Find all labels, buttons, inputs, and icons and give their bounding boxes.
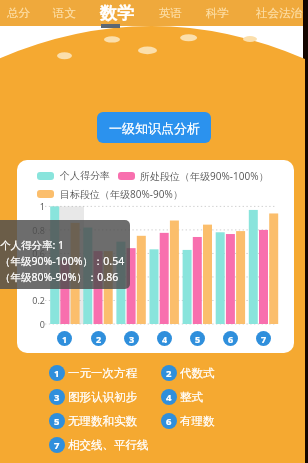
staticText: 0 bbox=[24, 318, 45, 330]
staticText: 6 bbox=[166, 415, 172, 428]
staticText: 1 bbox=[24, 200, 45, 212]
button[interactable]: 一级知识点分析 bbox=[97, 112, 211, 143]
staticText: 7 bbox=[261, 333, 267, 345]
staticText: （年级80%-90%）：0.86 bbox=[0, 270, 119, 284]
staticText: 1 bbox=[62, 333, 68, 345]
staticText: 3 bbox=[129, 333, 135, 345]
staticText: 个人得分率: 1 bbox=[0, 238, 65, 252]
button[interactable]: 数学 bbox=[92, 0, 142, 26]
button[interactable]: 总分 bbox=[0, 0, 37, 26]
button[interactable]: 2 bbox=[91, 331, 106, 346]
button[interactable]: 5 bbox=[190, 331, 205, 346]
button[interactable]: 6 bbox=[223, 331, 238, 346]
staticText: 个人得分率 bbox=[60, 169, 110, 182]
staticText: 相交线、平行线 bbox=[68, 438, 149, 452]
staticText: 7 bbox=[54, 439, 60, 452]
button[interactable]: 7 bbox=[49, 436, 149, 454]
staticText: 英语 bbox=[159, 6, 182, 20]
button[interactable]: 社会法治 bbox=[247, 0, 308, 26]
button[interactable]: 英语 bbox=[151, 0, 189, 26]
staticText: 4 bbox=[166, 391, 172, 404]
staticText: 无理数和实数 bbox=[68, 414, 137, 428]
staticText: 6 bbox=[228, 333, 234, 345]
staticText: 5 bbox=[54, 415, 60, 428]
staticText: （年级90%-100%）：0.54 bbox=[0, 254, 125, 268]
button[interactable]: 4 bbox=[157, 331, 172, 346]
staticText: 4 bbox=[162, 333, 168, 345]
button[interactable]: 科学 bbox=[198, 0, 236, 26]
button[interactable]: 7 bbox=[256, 331, 271, 346]
staticText: 一级知识点分析 bbox=[109, 120, 200, 136]
button[interactable]: 6 bbox=[161, 412, 215, 430]
button[interactable]: 4 bbox=[161, 388, 203, 406]
button[interactable]: 5 bbox=[49, 412, 137, 430]
button[interactable]: 1 bbox=[57, 331, 72, 346]
staticText: 1 bbox=[54, 367, 60, 380]
staticText: 科学 bbox=[206, 6, 229, 20]
staticText: 0.4 bbox=[24, 271, 45, 283]
button[interactable]: 1 bbox=[49, 364, 137, 382]
staticText: 目标段位（年级80%-90%） bbox=[60, 187, 183, 201]
staticText: 3 bbox=[54, 391, 60, 404]
staticText: 数学 bbox=[100, 3, 134, 24]
staticText: 所处段位（年级90%-100%） bbox=[140, 169, 269, 183]
staticText: 一元一次方程 bbox=[68, 366, 137, 380]
button[interactable]: 3 bbox=[124, 331, 139, 346]
staticText: 0.8 bbox=[24, 224, 45, 236]
button[interactable]: 语文 bbox=[45, 0, 83, 26]
staticText: 代数式 bbox=[180, 366, 215, 380]
staticText: 0.6 bbox=[24, 247, 45, 259]
staticText: 语文 bbox=[53, 6, 76, 20]
staticText: 有理数 bbox=[180, 414, 215, 428]
staticText: 图形认识初步 bbox=[68, 390, 137, 404]
button[interactable]: 3 bbox=[49, 388, 137, 406]
button[interactable]: 2 bbox=[161, 364, 215, 382]
staticText: 2 bbox=[166, 367, 172, 380]
staticText: 社会法治 bbox=[256, 6, 302, 20]
staticText: 2 bbox=[96, 333, 102, 345]
staticText: 总分 bbox=[7, 6, 30, 20]
staticText: 0.2 bbox=[24, 294, 45, 306]
staticText: 5 bbox=[195, 333, 201, 345]
staticText: 整式 bbox=[180, 390, 203, 404]
